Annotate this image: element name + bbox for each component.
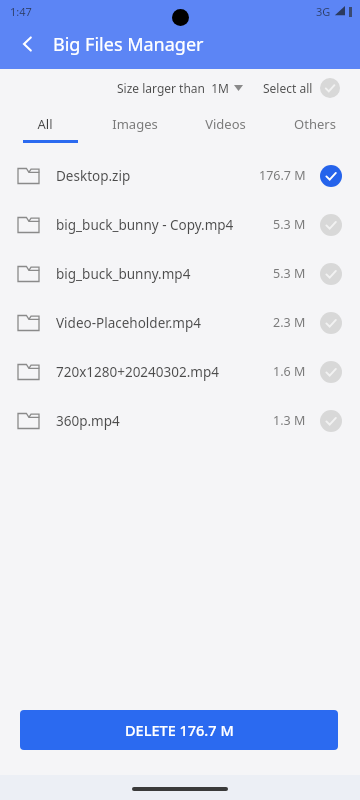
staticText: Others <box>294 115 336 133</box>
staticText: Desktop.zip <box>56 167 259 185</box>
staticText: 2.3 M <box>273 314 306 331</box>
staticText: 1:47 <box>10 4 32 19</box>
staticText: 720x1280+20240302.mp4 <box>56 363 273 381</box>
staticText: Video-Placeholder.mp4 <box>56 314 273 332</box>
staticText: 360p.mp4 <box>56 412 273 430</box>
button[interactable]: Videos <box>180 107 270 151</box>
button[interactable]: Size larger than 1M <box>115 78 245 98</box>
button[interactable]: Desktop.zip <box>0 151 360 200</box>
button[interactable]: Back <box>10 26 46 62</box>
button[interactable]: Video-Placeholder.mp4 <box>0 298 360 347</box>
staticText: Images <box>112 115 158 133</box>
staticText: big_buck_bunny - Copy.mp4 <box>56 216 273 234</box>
button[interactable]: 720x1280+20240302.mp4 <box>0 347 360 396</box>
button[interactable]: big_buck_bunny - Copy.mp4 <box>0 200 360 249</box>
staticText: 3G <box>316 4 331 19</box>
staticText: Big Files Manager <box>53 32 204 57</box>
staticText: 5.3 M <box>273 216 306 233</box>
staticText: big_buck_bunny.mp4 <box>56 265 273 283</box>
button[interactable]: 360p.mp4 <box>0 396 360 445</box>
staticText: Videos <box>205 115 246 133</box>
staticText: Size larger than 1M <box>117 80 229 96</box>
staticText: DELETE 176.7 M <box>125 720 234 740</box>
staticText: All <box>37 115 53 133</box>
staticText: 1.3 M <box>273 412 306 429</box>
staticText: 1.6 M <box>273 363 306 380</box>
staticText: 176.7 M <box>259 167 306 184</box>
button[interactable]: Others <box>270 107 360 151</box>
button[interactable]: big_buck_bunny.mp4 <box>0 249 360 298</box>
button[interactable]: DELETE 176.7 M <box>20 710 338 750</box>
button[interactable]: All <box>0 107 90 151</box>
staticText: 5.3 M <box>273 265 306 282</box>
staticText: Select all <box>263 80 313 96</box>
button[interactable]: Images <box>90 107 180 151</box>
button[interactable]: Select all <box>261 76 342 100</box>
